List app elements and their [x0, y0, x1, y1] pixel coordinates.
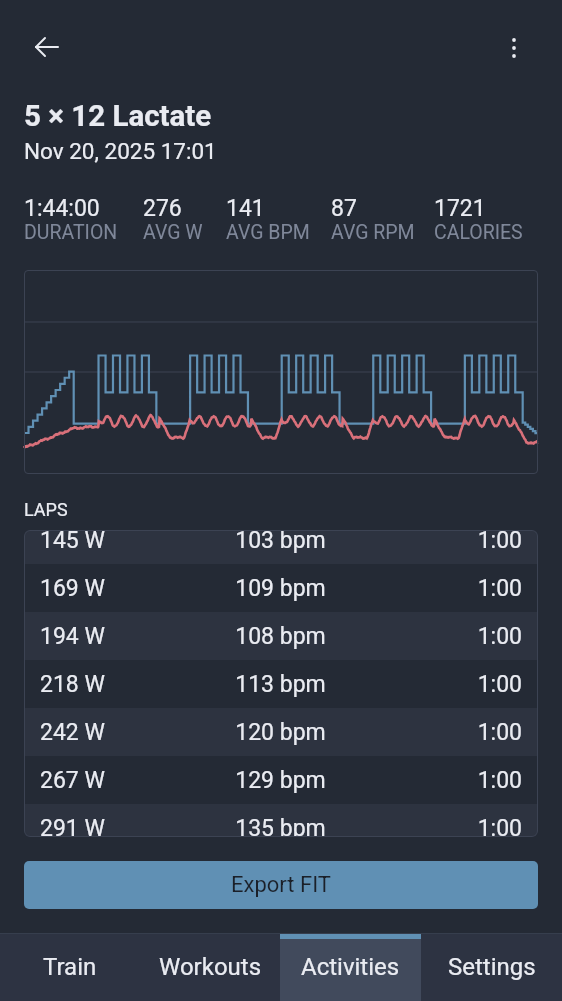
staticText: 120 bpm	[200, 719, 361, 746]
staticText: 291 W	[40, 815, 200, 837]
staticText: Settings	[448, 953, 536, 981]
button[interactable]: Train	[0, 933, 140, 1001]
staticText: 194 W	[40, 623, 200, 650]
staticText: CALORIES	[434, 221, 523, 241]
staticText: 5 × 12 Lactate	[24, 99, 212, 134]
staticText: 1:44:00	[24, 195, 100, 221]
staticText: AVG BPM	[226, 221, 310, 241]
button[interactable]: More options	[490, 24, 538, 72]
button[interactable]: 169 W	[24, 564, 538, 612]
staticText: 1:00	[361, 623, 522, 650]
staticText: 169 W	[40, 575, 200, 602]
staticText: 1:00	[361, 815, 522, 837]
staticText: 1:00	[361, 767, 522, 794]
staticText: DURATION	[24, 221, 118, 241]
button[interactable]: 242 W	[24, 708, 538, 756]
staticText: 267 W	[40, 767, 200, 794]
button[interactable]: Settings	[421, 933, 562, 1001]
staticText: 276	[143, 195, 182, 221]
button[interactable]: 194 W	[24, 612, 538, 660]
button[interactable]: 145 W	[24, 530, 538, 564]
staticText: Workouts	[159, 953, 262, 981]
staticText: 109 bpm	[200, 575, 361, 602]
button[interactable]: Activities	[280, 933, 421, 1001]
button[interactable]: Workouts	[140, 933, 280, 1001]
staticText: 87	[331, 195, 357, 221]
staticText: Export FIT	[231, 872, 331, 898]
staticText: 113 bpm	[200, 671, 361, 698]
staticText: LAPS	[24, 499, 68, 520]
staticText: 1:00	[361, 530, 522, 554]
staticText: 108 bpm	[200, 623, 361, 650]
button[interactable]: Back	[23, 23, 71, 71]
staticText: 135 bpm	[200, 815, 361, 837]
staticText: 1:00	[361, 719, 522, 746]
staticText: AVG RPM	[331, 221, 415, 241]
staticText: Activities	[301, 953, 400, 981]
staticText: 145 W	[40, 530, 200, 554]
staticText: Nov 20, 2025 17:01	[24, 138, 217, 164]
staticText: 1:00	[361, 671, 522, 698]
button[interactable]: Export FIT	[24, 861, 538, 909]
button[interactable]: 291 W	[24, 804, 538, 837]
staticText: 218 W	[40, 671, 200, 698]
staticText: 103 bpm	[200, 530, 361, 554]
button[interactable]: 218 W	[24, 660, 538, 708]
staticText: 1:00	[361, 575, 522, 602]
staticText: AVG W	[143, 221, 203, 241]
staticText: 1721	[434, 195, 486, 221]
staticText: 141	[226, 195, 265, 221]
staticText: 242 W	[40, 719, 200, 746]
button[interactable]: 267 W	[24, 756, 538, 804]
staticText: Train	[43, 953, 97, 981]
staticText: 129 bpm	[200, 767, 361, 794]
